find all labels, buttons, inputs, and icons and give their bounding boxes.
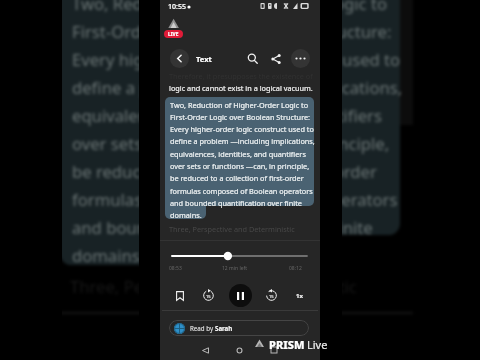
staticText: First-Order Logic over Boolean Structure… <box>170 112 311 122</box>
staticText: Every higher-order logic construct used … <box>170 124 314 134</box>
button[interactable]: Read by <box>169 320 309 336</box>
staticText: LIVE <box>168 31 179 38</box>
staticText: PRISM <box>269 337 305 352</box>
staticText: Every higher-order logic construct used … <box>72 48 401 71</box>
staticText: formulas composed of Boolean operators <box>72 188 398 211</box>
staticText: be reduced to a collection of first-orde… <box>170 173 304 183</box>
staticText: Three, Perspective and Deterministic <box>169 224 295 234</box>
staticText: domains. <box>170 210 202 220</box>
button[interactable]: Pause <box>229 284 252 307</box>
button[interactable]: Back <box>170 49 189 68</box>
staticText: equivalences, identities, and quantifier… <box>170 149 306 159</box>
button[interactable]: Home <box>232 343 246 357</box>
staticText: 15 <box>206 294 211 299</box>
staticText: equivalences, identities, and quantifier… <box>72 104 382 127</box>
staticText: over sets or functions —can, in principl… <box>72 132 390 155</box>
button[interactable]: Recents <box>267 343 281 357</box>
staticText: Read by <box>190 324 215 332</box>
button[interactable]: Rewind 15 seconds <box>200 287 217 304</box>
staticText: 12 min left <box>222 265 248 272</box>
button[interactable]: Search <box>244 50 261 67</box>
button[interactable]: Share <box>267 50 284 67</box>
staticText: First-Order Logic over Boolean Structure… <box>72 20 392 43</box>
staticText: define a problem —including implications… <box>72 76 403 99</box>
staticText: be reduced to a collection of first-orde… <box>72 160 377 183</box>
staticText: 10:55 <box>168 2 186 12</box>
staticText: Three, Perspective and Deterministic <box>70 275 357 298</box>
staticText: and bounded quantification over finite <box>72 216 373 239</box>
button[interactable]: Navigate back <box>198 343 212 357</box>
button[interactable]: Text <box>196 50 212 67</box>
staticText: Live <box>307 337 328 352</box>
staticText: define a problem —including implications… <box>170 136 315 146</box>
button[interactable]: Forward 15 seconds <box>263 287 280 304</box>
staticText: Sarah <box>215 324 233 332</box>
staticText: Two, Reduction of Higher-Order Logic to <box>170 100 309 110</box>
staticText: 08:12 <box>289 265 302 272</box>
staticText: Text <box>196 54 212 64</box>
staticText: logic and cannot exist in a logical vacu… <box>169 83 313 93</box>
staticText: formulas composed of Boolean operators <box>170 186 313 196</box>
staticText: 15 <box>269 294 274 299</box>
staticText: and bounded quantification over finite <box>170 198 302 208</box>
button[interactable]: More options <box>291 49 310 68</box>
staticText: Two, Reduction of Higher-Order Logic to <box>72 0 388 15</box>
staticText: domains. <box>72 244 145 267</box>
button[interactable]: Bookmark <box>171 287 188 304</box>
staticText: over sets or functions —can, in principl… <box>170 161 310 171</box>
button[interactable]: 1x <box>291 287 308 304</box>
staticText: 1x <box>296 292 303 300</box>
button[interactable]: Seek bar <box>171 250 308 262</box>
staticText: 08:53 <box>169 265 182 272</box>
